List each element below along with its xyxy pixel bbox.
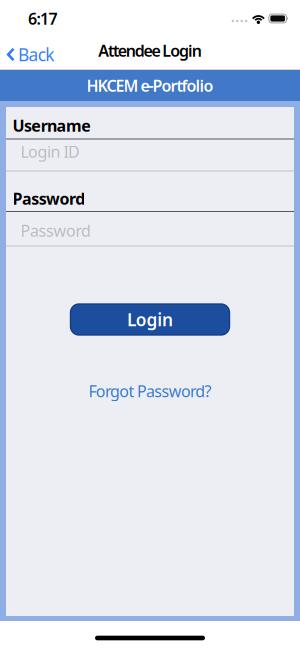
staticText: Password [20,220,91,241]
staticText: Attendee Login [98,40,202,61]
staticText: Back [18,43,54,66]
button[interactable]: Login ID [6,139,294,170]
staticText: 6:17 [28,8,57,29]
staticText: HKCEM e-Portfolio [86,75,213,96]
staticText: Login [127,308,173,331]
staticText: Password [12,188,85,209]
button[interactable]: Password [6,212,294,245]
staticText: Login ID [20,141,80,162]
button[interactable]: Forgot Password? [88,382,211,400]
button[interactable]: Back [0,33,54,72]
button[interactable]: Login [70,304,229,335]
staticText: Username [12,115,91,136]
staticText: Forgot Password? [88,380,211,402]
